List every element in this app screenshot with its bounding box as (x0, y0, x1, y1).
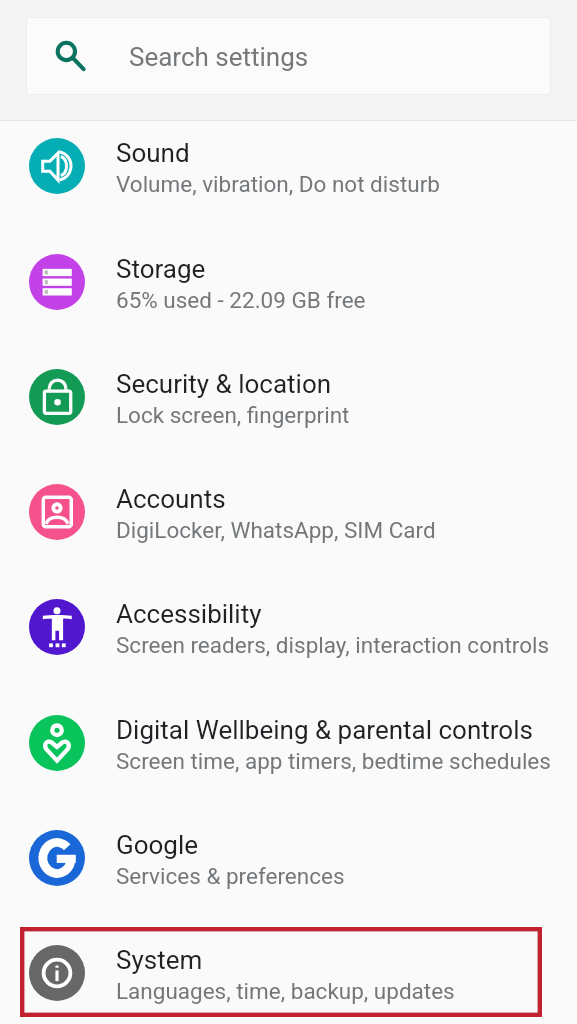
staticText: Storage (116, 254, 577, 284)
staticText: Screen readers, display, interaction con… (116, 632, 577, 658)
button[interactable]: System (0, 915, 577, 1024)
button[interactable]: Storage (0, 224, 577, 339)
staticText: DigiLocker, WhatsApp, SIM Card (116, 517, 577, 543)
button[interactable]: Sound (0, 108, 577, 223)
staticText: Digital Wellbeing & parental controls (116, 715, 577, 745)
staticText: Accounts (116, 484, 577, 514)
button[interactable]: Accounts (0, 454, 577, 569)
staticText: 65% used - 22.09 GB free (116, 287, 577, 313)
staticText: Screen time, app timers, bedtime schedul… (116, 748, 577, 774)
staticText: Lock screen, fingerprint (116, 402, 577, 428)
staticText: Volume, vibration, Do not disturb (116, 171, 577, 197)
staticText: Services & preferences (116, 863, 577, 889)
button[interactable]: Search (26, 17, 551, 95)
staticText: Accessibility (116, 599, 577, 629)
staticText: System (116, 945, 577, 975)
staticText: Sound (116, 138, 577, 168)
button[interactable]: Security & location (0, 339, 577, 454)
staticText: Languages, time, backup, updates (116, 978, 577, 1004)
button[interactable]: Google (0, 800, 577, 915)
staticText: Security & location (116, 369, 577, 399)
button[interactable]: Digital Wellbeing & parental controls (0, 685, 577, 800)
staticText: Google (116, 830, 577, 860)
button[interactable]: Accessibility (0, 569, 577, 684)
staticText: Search settings (129, 42, 309, 72)
other: Search (54, 40, 86, 72)
